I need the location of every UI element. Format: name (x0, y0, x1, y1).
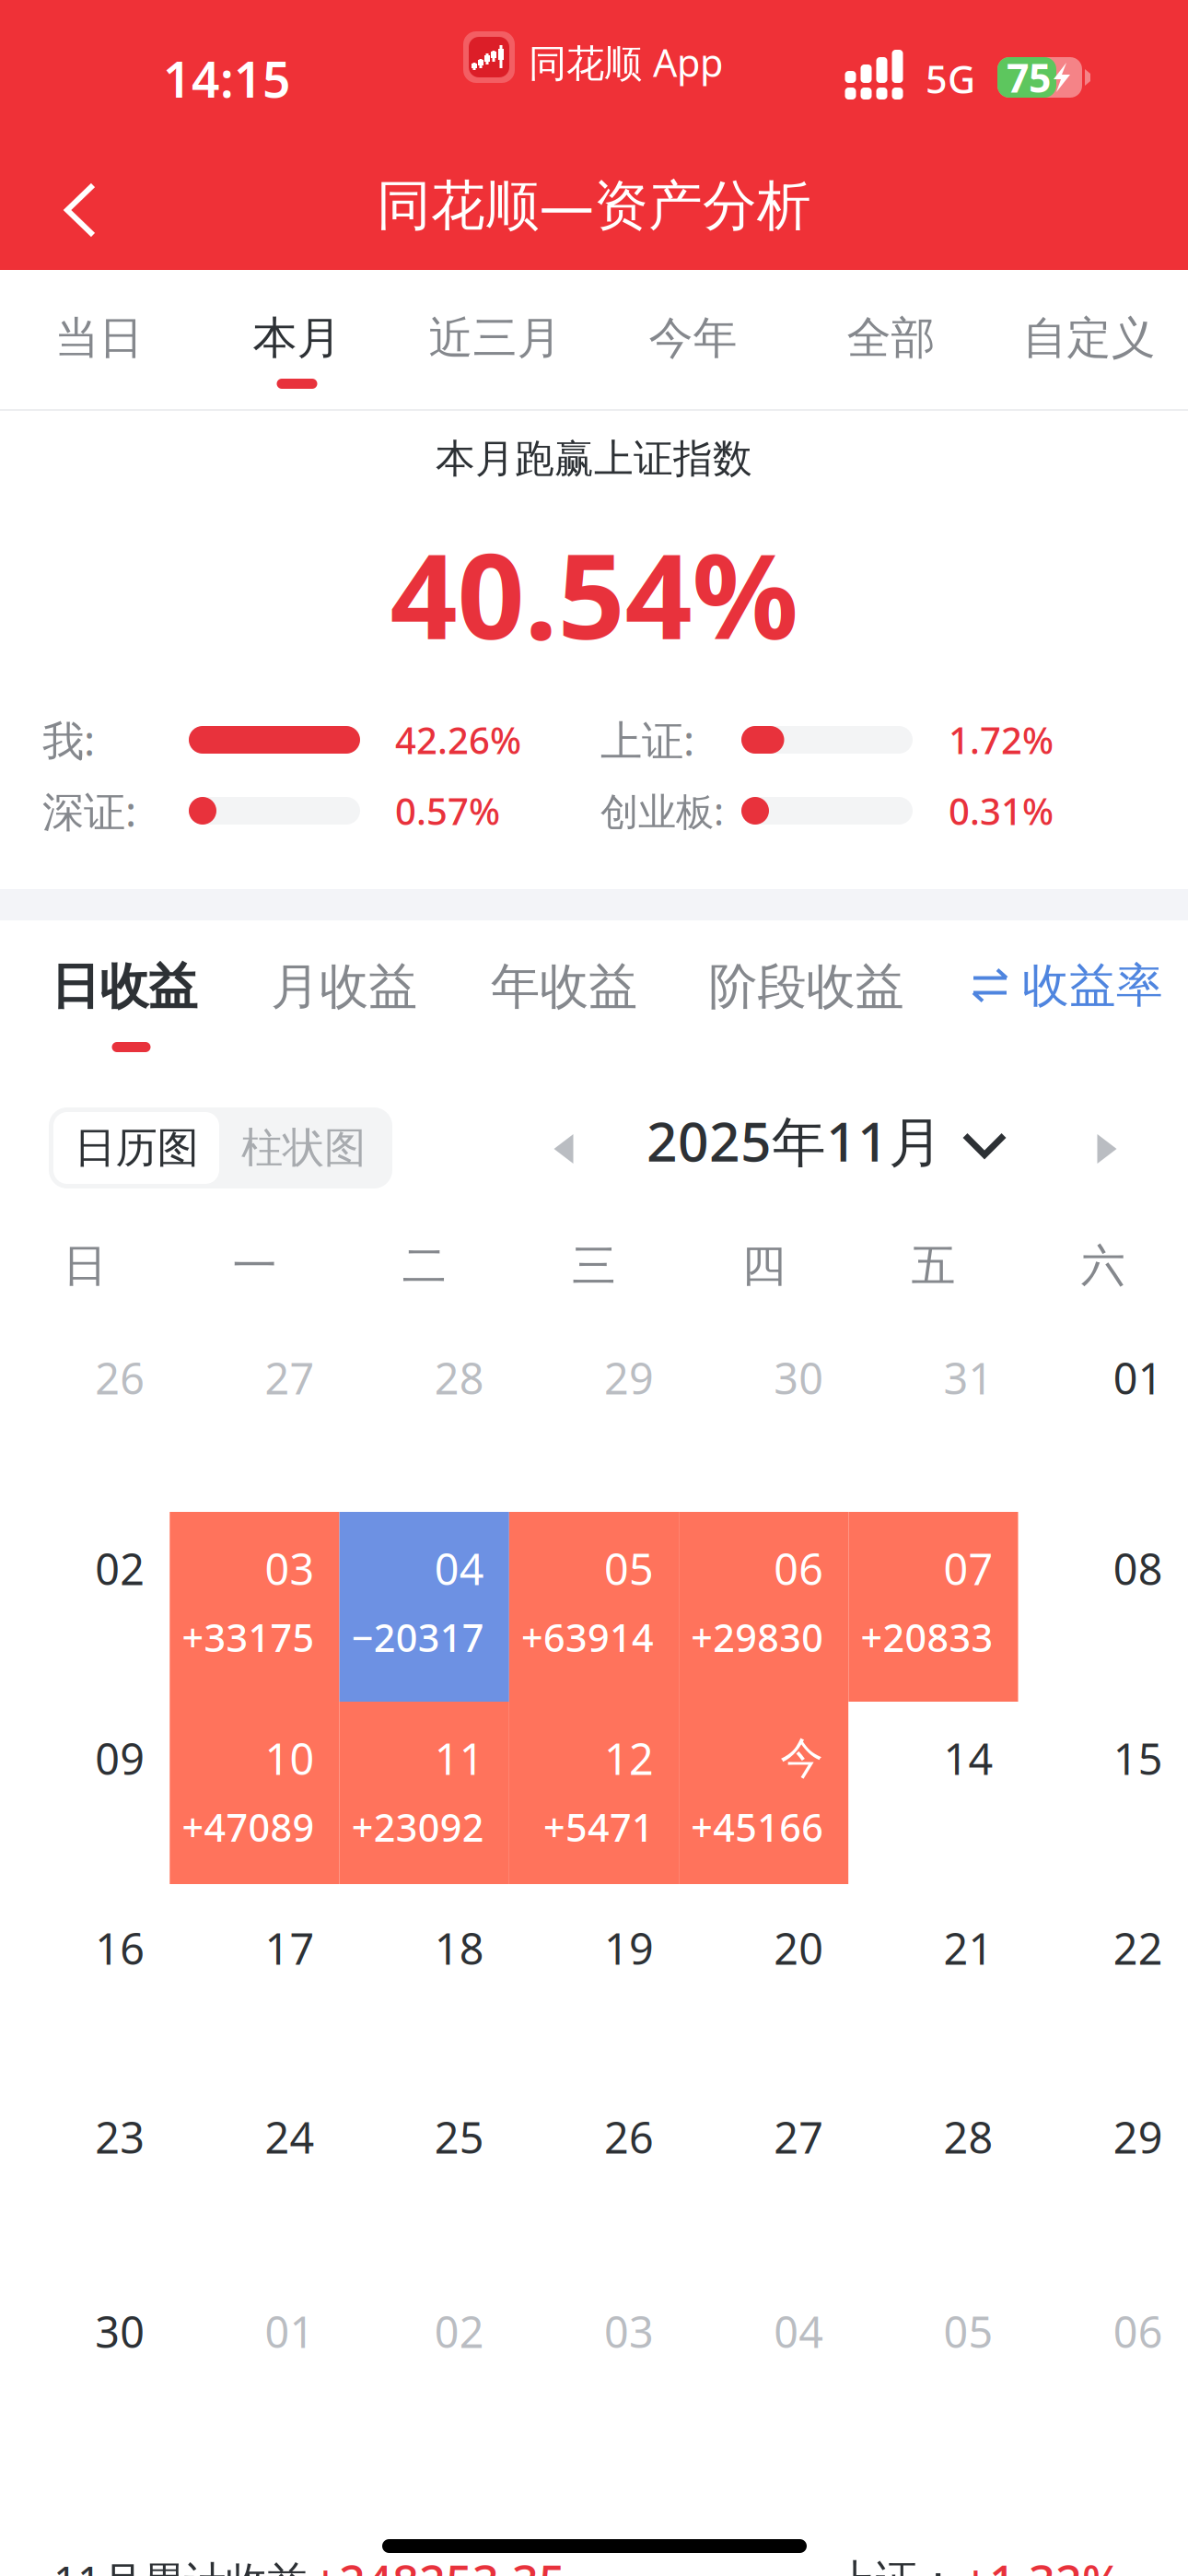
staticText: 全部 (847, 311, 935, 365)
button[interactable]: 自定义 (990, 270, 1188, 410)
button[interactable]: 下个月 (1071, 1110, 1143, 1188)
button[interactable]: 近三月 (396, 270, 594, 410)
button[interactable]: 23 (0, 2073, 170, 2267)
button[interactable]: 30 (0, 2267, 170, 2462)
button[interactable]: 03 (170, 1512, 339, 1702)
staticText: 一 (232, 1239, 277, 1293)
staticText: 深证: (42, 783, 136, 838)
button[interactable]: 柱状图 (219, 1112, 388, 1184)
staticText: 09 (95, 1730, 145, 1787)
button[interactable]: 29 (509, 1308, 679, 1512)
staticText: 近三月 (429, 311, 561, 365)
staticText: 五 (911, 1239, 956, 1293)
staticText: 25 (434, 2108, 484, 2166)
button[interactable]: 17 (170, 1884, 339, 2073)
staticText: 05 (944, 2303, 993, 2360)
button[interactable]: 18 (339, 1884, 509, 2073)
button[interactable]: 01 (1018, 1308, 1188, 1512)
button[interactable]: 07 (849, 1512, 1018, 1702)
button[interactable]: 25 (339, 2073, 509, 2267)
staticText: 20 (774, 1920, 824, 1977)
button[interactable]: 08 (1018, 1512, 1188, 1702)
staticText: +1.32% (962, 2550, 1122, 2576)
staticText: 创业板: (600, 786, 724, 836)
button[interactable]: 21 (849, 1884, 1018, 2073)
button[interactable]: 阶段收益 (711, 934, 902, 1063)
staticText: 阶段收益 (709, 957, 904, 1017)
staticText: 06 (774, 1540, 824, 1597)
button[interactable]: 15 (1018, 1702, 1188, 1884)
button[interactable]: 年收益 (493, 934, 635, 1063)
button[interactable]: 29 (1018, 2073, 1188, 2267)
staticText: 21 (944, 1920, 993, 1977)
staticText: 23 (95, 2108, 145, 2166)
button[interactable]: 26 (509, 2073, 679, 2267)
staticText: 上证: (600, 712, 694, 768)
staticText: 今年 (649, 311, 737, 365)
button[interactable]: 22 (1018, 1884, 1188, 2073)
button[interactable]: 06 (679, 1512, 849, 1702)
button[interactable]: 28 (849, 2073, 1018, 2267)
staticText: 02 (434, 2303, 484, 2360)
staticText: 当日 (55, 311, 143, 365)
button[interactable]: 05 (849, 2267, 1018, 2462)
button[interactable]: 本月 (198, 270, 396, 410)
button[interactable]: 27 (170, 1308, 339, 1512)
button[interactable]: 返回 (29, 159, 131, 261)
button[interactable]: 05 (509, 1512, 679, 1702)
staticText: 30 (774, 1349, 824, 1406)
staticText: +23092 (352, 1802, 484, 1852)
button[interactable]: 上个月 (528, 1110, 600, 1188)
button[interactable]: 收益率 (971, 953, 1169, 1019)
staticText: 11月累计收益 (53, 2553, 309, 2576)
button[interactable]: 06 (1018, 2267, 1188, 2462)
staticText: 24 (265, 2108, 314, 2166)
staticText: 04 (774, 2303, 824, 2360)
staticText: 40.54% (390, 515, 798, 672)
button[interactable]: 04 (339, 1512, 509, 1702)
staticText: +29830 (691, 1612, 824, 1663)
staticText: +63914 (521, 1612, 654, 1663)
staticText: 二 (402, 1239, 446, 1293)
button[interactable]: 31 (849, 1308, 1018, 1512)
button[interactable]: 日收益 (52, 934, 195, 1063)
button[interactable]: 02 (339, 2267, 509, 2462)
staticText: 29 (1113, 2108, 1163, 2166)
staticText: 31 (944, 1349, 993, 1406)
button[interactable]: 19 (509, 1884, 679, 2073)
button[interactable]: 12 (509, 1702, 679, 1884)
button[interactable]: 09 (0, 1702, 170, 1884)
button[interactable]: 02 (0, 1512, 170, 1702)
button[interactable]: 24 (170, 2073, 339, 2267)
button[interactable]: 16 (0, 1884, 170, 2073)
button[interactable]: 今年 (594, 270, 792, 410)
button[interactable]: 全部 (792, 270, 990, 410)
button[interactable]: 10 (170, 1702, 339, 1884)
staticText: 06 (1113, 2303, 1163, 2360)
button[interactable]: 27 (679, 2073, 849, 2267)
button[interactable]: 当日 (0, 270, 198, 410)
staticText: 27 (265, 1349, 314, 1406)
staticText: 上证： (834, 2555, 959, 2576)
staticText: 18 (434, 1920, 484, 1977)
staticText: 四 (742, 1239, 786, 1293)
button[interactable]: 今 (679, 1702, 849, 1884)
button[interactable]: 月收益 (273, 934, 415, 1063)
button[interactable]: 28 (339, 1308, 509, 1512)
button[interactable]: 11 (339, 1702, 509, 1884)
staticText: 14:15 (163, 46, 291, 111)
button[interactable]: 01 (170, 2267, 339, 2462)
staticText: 同花顺 App (529, 37, 723, 87)
button[interactable]: 30 (679, 1308, 849, 1512)
button[interactable]: 14 (849, 1702, 1018, 1884)
staticText: 自定义 (1023, 311, 1155, 365)
button[interactable]: 03 (509, 2267, 679, 2462)
staticText: 30 (95, 2303, 145, 2360)
button[interactable]: 20 (679, 1884, 849, 2073)
staticText: 19 (604, 1920, 654, 1977)
button[interactable]: 日历图 (53, 1112, 219, 1184)
button[interactable]: 26 (0, 1308, 170, 1512)
button[interactable]: 04 (679, 2267, 849, 2462)
button[interactable]: 选择月份 (945, 1107, 1024, 1184)
staticText: 26 (604, 2108, 654, 2166)
